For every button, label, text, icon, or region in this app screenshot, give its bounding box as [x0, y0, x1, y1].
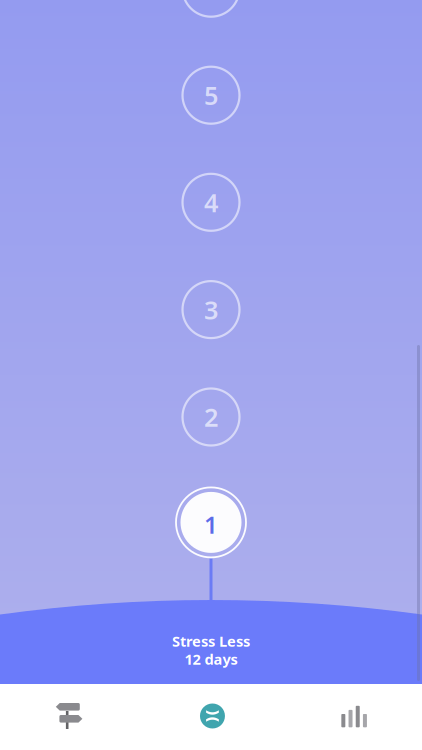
button[interactable]: 4	[169, 160, 253, 244]
button[interactable]: 2	[169, 375, 253, 459]
staticText: 12 days	[184, 649, 237, 669]
staticText: 5	[204, 78, 218, 112]
staticText: Stress Less	[172, 631, 250, 651]
button[interactable]: Explore	[0, 684, 141, 750]
staticText: 3	[204, 293, 218, 326]
staticText: 4	[204, 185, 218, 219]
button[interactable]: 6	[169, 0, 253, 30]
staticText: 1	[204, 508, 218, 540]
button[interactable]: 5	[169, 53, 253, 137]
button[interactable]: 1	[169, 480, 253, 564]
button[interactable]: 3	[169, 268, 253, 352]
button[interactable]: Stats	[281, 684, 422, 750]
button[interactable]: Mood	[141, 684, 281, 750]
staticText: 2	[204, 400, 218, 434]
